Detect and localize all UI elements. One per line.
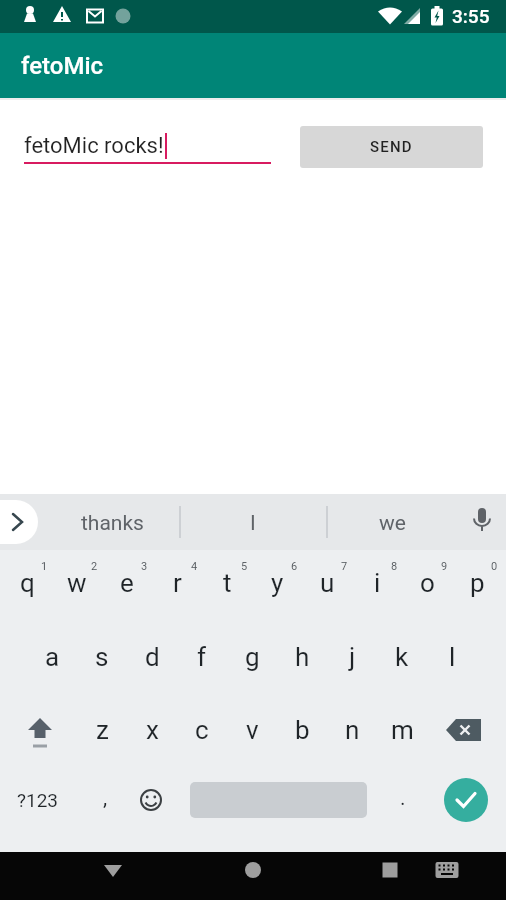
- staticText: u: [320, 568, 335, 598]
- staticText: ,: [103, 786, 108, 811]
- staticText: a: [45, 642, 60, 672]
- staticText: e: [120, 568, 134, 598]
- staticText: 9: [441, 560, 448, 573]
- staticText: c: [195, 715, 209, 745]
- staticText: 0: [491, 560, 498, 573]
- staticText: q: [20, 568, 35, 598]
- staticText: v: [246, 715, 259, 745]
- staticText: j: [349, 642, 356, 672]
- staticText: 8: [391, 560, 398, 573]
- staticText: 3:55: [452, 5, 490, 27]
- staticText: 6: [291, 560, 298, 573]
- staticText: we: [379, 511, 406, 536]
- staticText: w: [67, 568, 87, 598]
- staticText: 3: [141, 560, 148, 573]
- staticText: o: [420, 568, 435, 598]
- staticText: z: [96, 715, 109, 745]
- staticText: 2: [91, 560, 98, 573]
- staticText: i: [374, 568, 381, 598]
- staticText: .: [400, 786, 406, 811]
- staticText: 7: [341, 560, 348, 573]
- staticText: l: [449, 642, 456, 672]
- staticText: 4: [191, 560, 198, 573]
- staticText: fetoMic rocks!: [24, 133, 164, 159]
- staticText: r: [173, 568, 182, 598]
- staticText: f: [197, 642, 207, 672]
- staticText: I: [250, 511, 256, 536]
- staticText: thanks: [81, 511, 144, 536]
- staticText: s: [95, 642, 109, 672]
- staticText: k: [395, 642, 409, 672]
- staticText: 1: [41, 560, 48, 573]
- staticText: x: [146, 715, 159, 745]
- staticText: d: [145, 642, 160, 672]
- staticText: fetoMic: [21, 52, 104, 80]
- staticText: h: [295, 642, 310, 672]
- staticText: t: [223, 568, 232, 598]
- staticText: ?123: [17, 789, 59, 811]
- staticText: n: [345, 715, 360, 745]
- staticText: SEND: [370, 138, 413, 156]
- staticText: p: [470, 568, 485, 598]
- staticText: b: [295, 715, 310, 745]
- staticText: g: [245, 642, 260, 672]
- staticText: 5: [241, 560, 248, 573]
- staticText: m: [391, 715, 414, 745]
- staticText: y: [271, 568, 284, 598]
